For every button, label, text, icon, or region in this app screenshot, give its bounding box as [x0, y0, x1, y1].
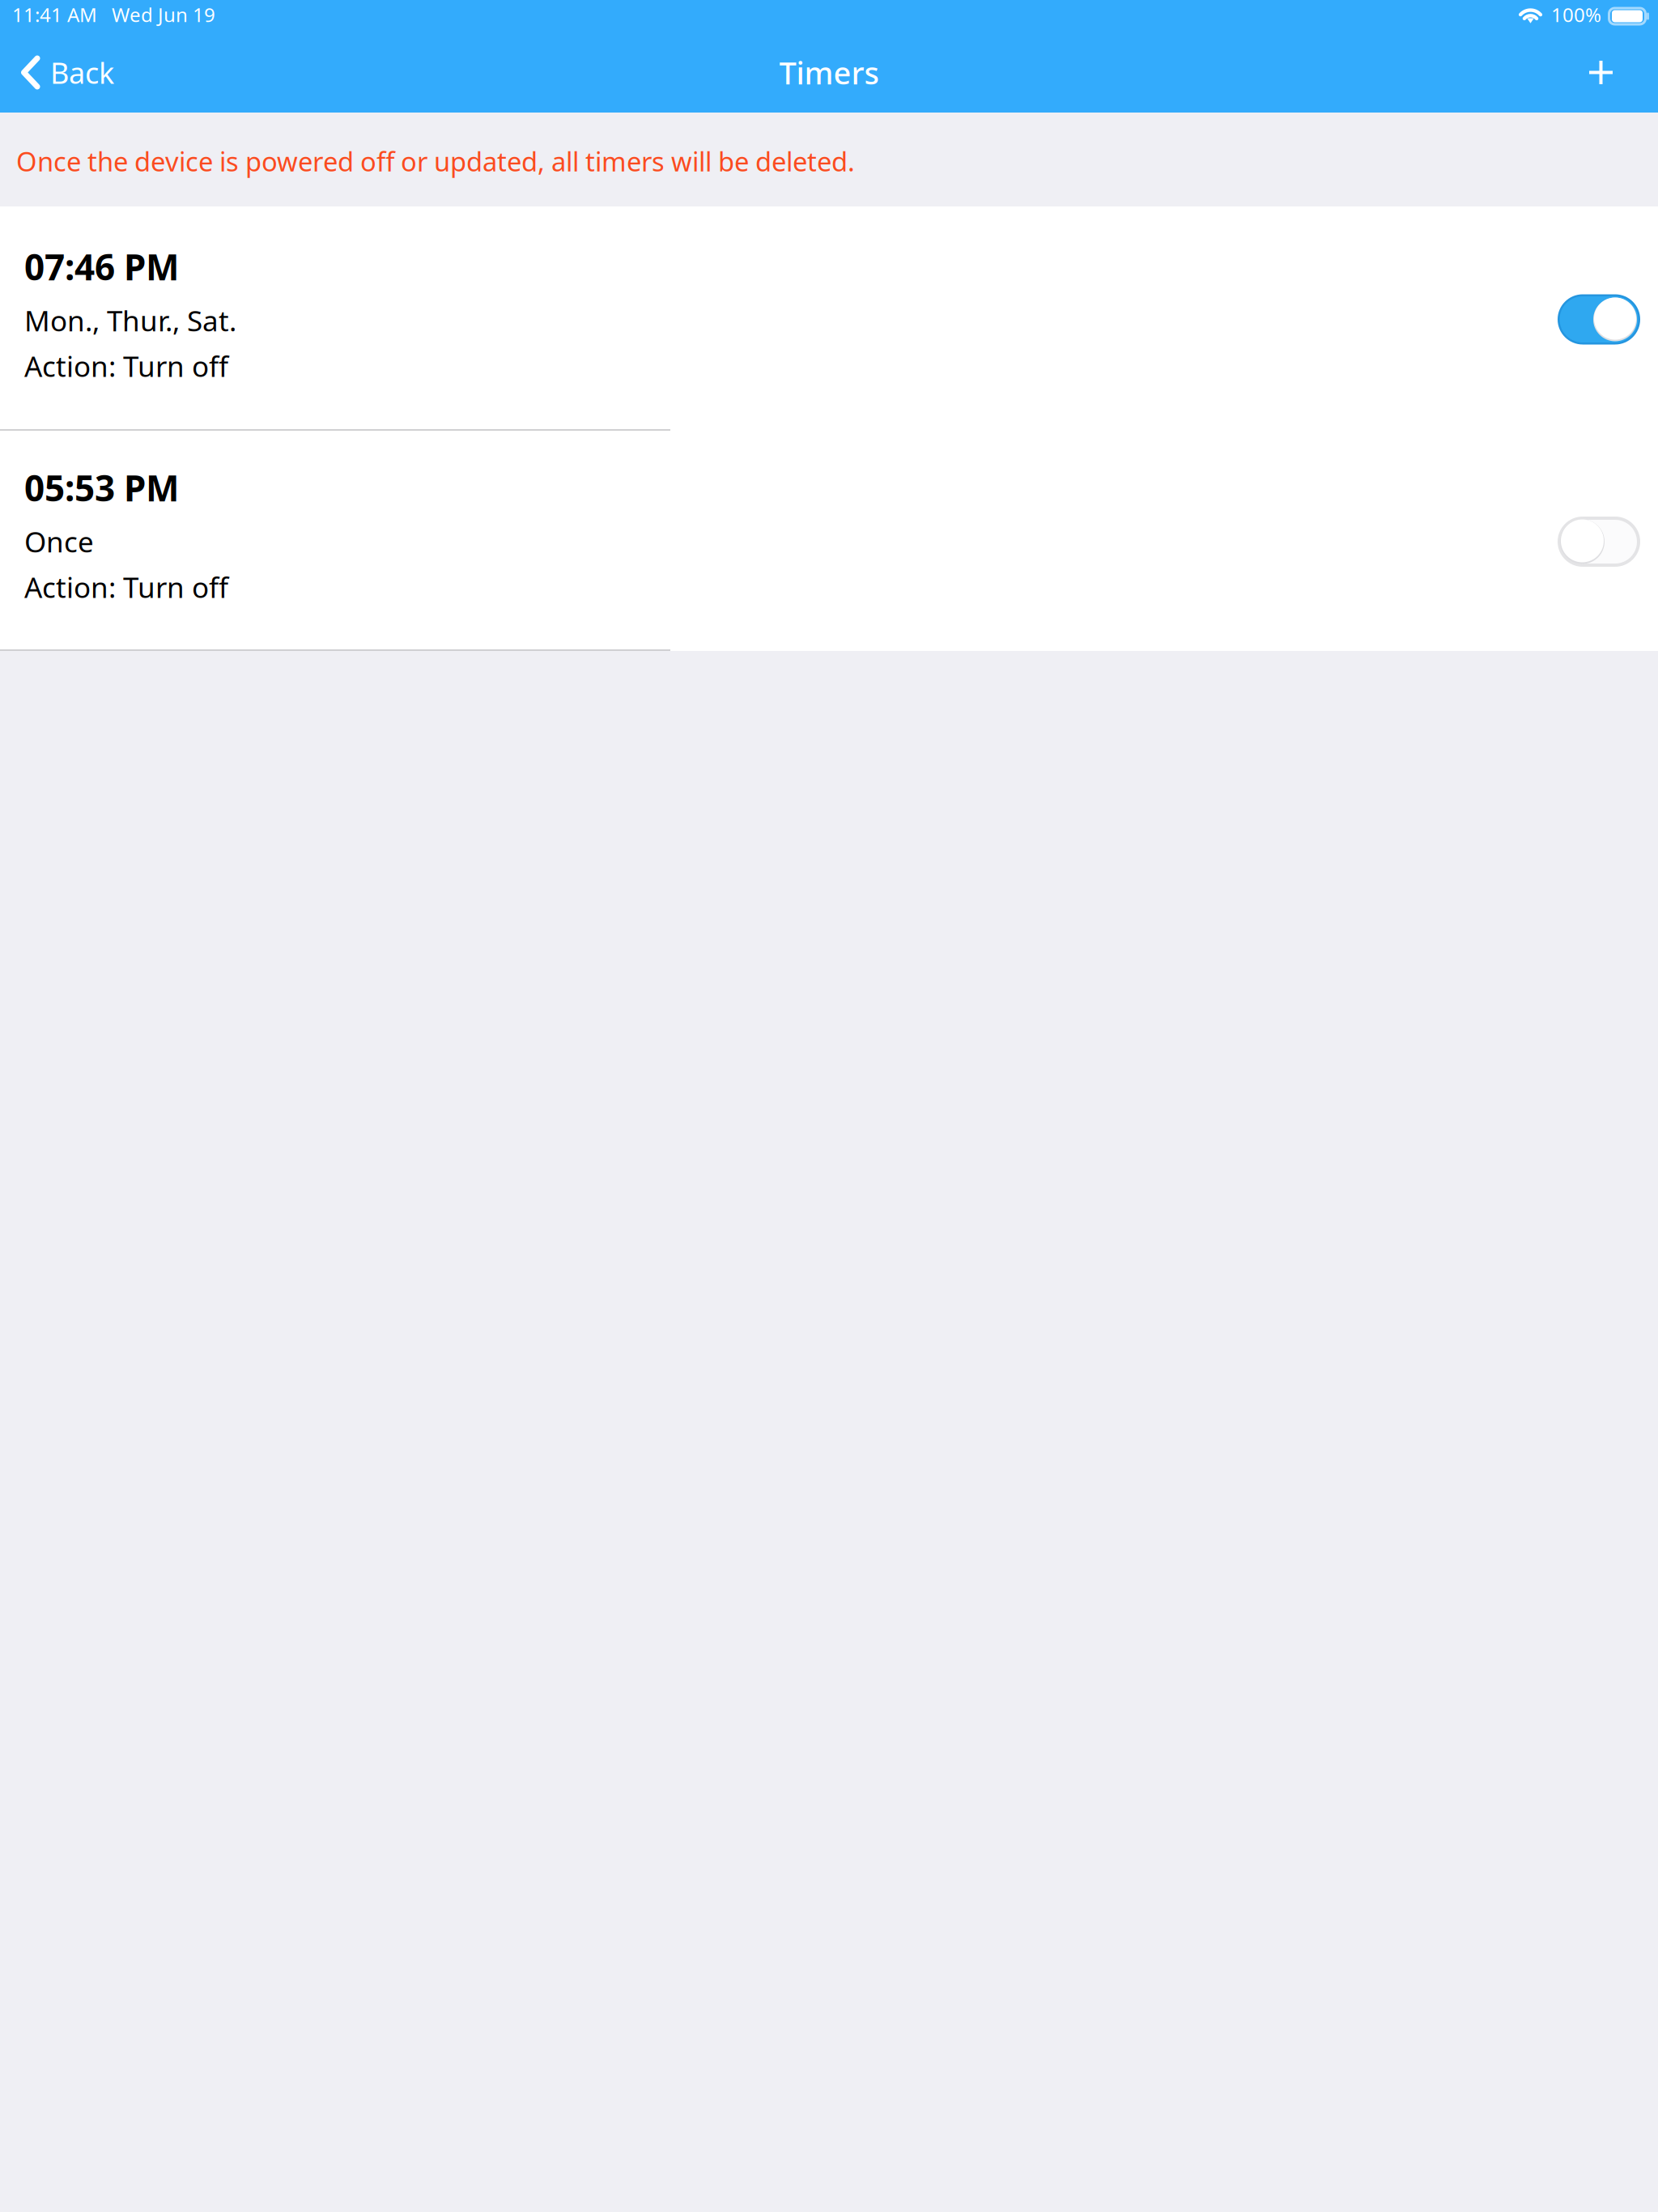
staticText: Once [24, 523, 94, 560]
button[interactable]: Add timer [1557, 32, 1658, 113]
staticText: Action: Turn off [24, 347, 228, 385]
staticText: Action: Turn off [24, 568, 228, 606]
staticText: 05:53 PM [24, 464, 179, 511]
staticText: Back [50, 53, 114, 92]
staticText: Once the device is powered off or update… [16, 144, 855, 179]
button[interactable]: 07:46 PM [0, 206, 1658, 429]
button[interactable]: Timer on [1558, 291, 1640, 345]
staticText: 100% [1551, 2, 1601, 28]
staticText: 07:46 PM [24, 243, 179, 290]
button[interactable]: 05:53 PM [0, 431, 1658, 649]
staticText: 11:41 AM Wed Jun 19 [12, 2, 215, 28]
button[interactable]: Back [0, 32, 128, 113]
staticText: Mon., Thur., Sat. [24, 302, 236, 339]
button[interactable]: Timer off [1558, 513, 1640, 567]
staticText: Timers [779, 52, 879, 93]
